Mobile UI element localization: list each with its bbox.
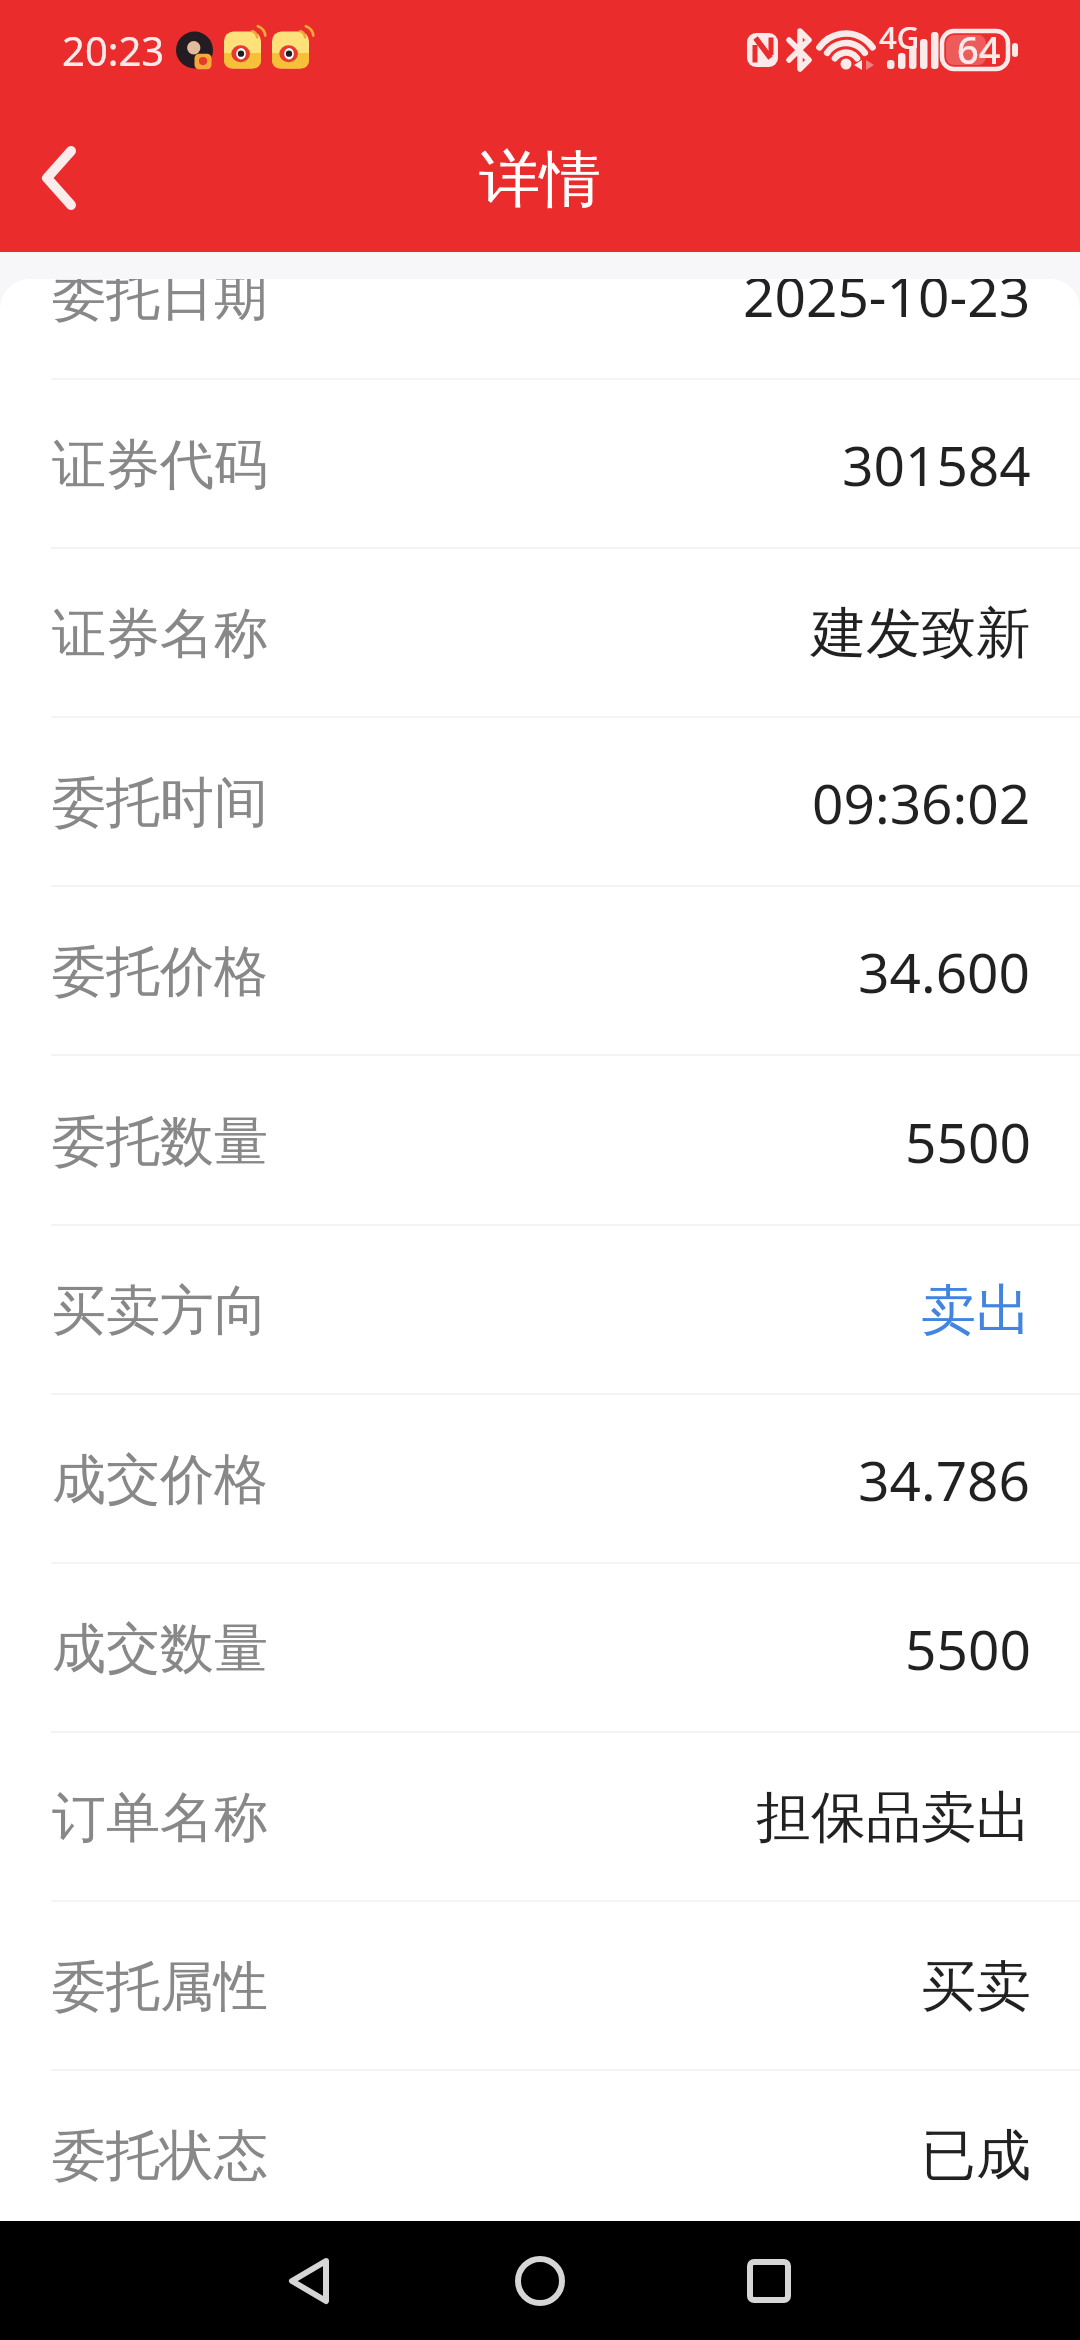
staticText: 委托时间: [52, 769, 268, 837]
button[interactable]: 委托价格: [0, 887, 1080, 1056]
staticText: 委托日期: [52, 279, 268, 330]
staticText: 64: [957, 23, 1001, 75]
button[interactable]: 证券名称: [0, 549, 1080, 718]
staticText: 担保品卖出: [756, 1783, 1031, 1852]
staticText: 成交数量: [52, 1615, 268, 1683]
button[interactable]: Back: [0, 100, 120, 252]
staticText: 详情: [479, 141, 601, 218]
staticText: 34.600: [858, 934, 1031, 1009]
staticText: 卖出: [921, 1276, 1031, 1345]
button[interactable]: 委托时间: [0, 718, 1080, 887]
button[interactable]: 委托数量: [0, 1057, 1080, 1226]
staticText: 订单名称: [52, 1784, 268, 1852]
staticText: 09:36:02: [812, 765, 1031, 840]
button[interactable]: 委托日期: [0, 279, 1080, 380]
button[interactable]: 委托属性: [0, 1902, 1080, 2071]
staticText: 5500: [905, 1611, 1031, 1686]
staticText: 证券名称: [52, 600, 268, 668]
staticText: 买卖方向: [52, 1277, 268, 1345]
staticText: 成交价格: [52, 1446, 268, 1514]
button[interactable]: Home: [480, 2221, 600, 2340]
staticText: 301584: [842, 427, 1031, 502]
staticText: 已成: [921, 2121, 1031, 2190]
staticText: 买卖: [921, 1952, 1031, 2021]
staticText: 委托状态: [52, 2122, 268, 2190]
button[interactable]: 订单名称: [0, 1733, 1080, 1902]
button[interactable]: 成交价格: [0, 1395, 1080, 1564]
button[interactable]: 证券代码: [0, 380, 1080, 549]
button[interactable]: Recent apps: [709, 2221, 829, 2340]
staticText: 委托属性: [52, 1953, 268, 2021]
staticText: 5500: [905, 1104, 1031, 1179]
staticText: 2025-10-23: [743, 279, 1031, 333]
staticText: 34.786: [858, 1442, 1031, 1517]
button[interactable]: 买卖方向: [0, 1226, 1080, 1395]
staticText: 委托数量: [52, 1108, 268, 1176]
staticText: 4G: [879, 16, 920, 58]
button[interactable]: 委托状态: [0, 2071, 1080, 2221]
button[interactable]: 成交数量: [0, 1564, 1080, 1733]
staticText: 20:23: [62, 23, 165, 77]
staticText: 证券代码: [52, 431, 268, 499]
button[interactable]: Back: [249, 2221, 369, 2340]
staticText: 委托价格: [52, 938, 268, 1006]
staticText: 建发致新: [811, 599, 1031, 668]
